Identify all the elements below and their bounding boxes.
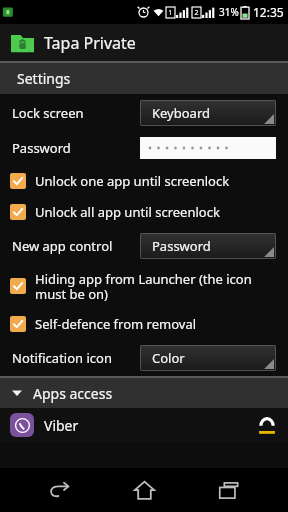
staticText: Password [12,139,140,157]
staticText: Password [152,237,211,255]
staticText: 2 [194,8,199,18]
button[interactable]: Unlock all app until screenlock [0,196,288,227]
button[interactable]: Color [140,345,276,371]
staticText: Viber [44,416,258,435]
staticText: Notification icon [12,349,140,367]
button[interactable]: Apps access [0,378,288,408]
button[interactable]: Password [140,233,276,259]
staticText: Hiding app from Launcher (the icon must … [35,270,252,303]
staticText: Settings [17,69,71,88]
button[interactable]: Home [120,468,168,512]
button[interactable]: New app control [0,227,288,264]
button[interactable]: Keyboard [140,100,276,126]
staticText: Unlock one app until screenlock [35,172,230,190]
staticText: Apps access [33,384,113,403]
staticText: Color [152,349,185,367]
other: Locked [258,415,276,435]
button[interactable]: Notification icon [0,339,288,376]
button[interactable]: Tapa Private [0,24,288,61]
button[interactable]: Unlock one app until screenlock [0,165,288,196]
staticText: Self-defence from removal [35,315,197,333]
button[interactable]: Recent apps [204,468,252,512]
staticText: Keyboard [152,104,211,122]
button[interactable]: Hiding app from Launcher (the icon must … [0,264,288,308]
button[interactable]: Password [0,131,288,165]
button[interactable]: Self-defence from removal [0,308,288,339]
staticText: 31% [219,5,239,19]
staticText: Lock screen [12,104,140,122]
staticText: New app control [12,237,140,255]
button[interactable] [140,137,276,159]
staticText: Tapa Private [44,32,136,54]
staticText: 1 [168,8,173,18]
button[interactable]: Viber [0,408,288,442]
button[interactable]: Back [36,468,84,512]
button[interactable]: Lock screen [0,94,288,131]
staticText: Unlock all app until screenlock [35,203,220,221]
staticText: 12:35 [253,4,284,20]
